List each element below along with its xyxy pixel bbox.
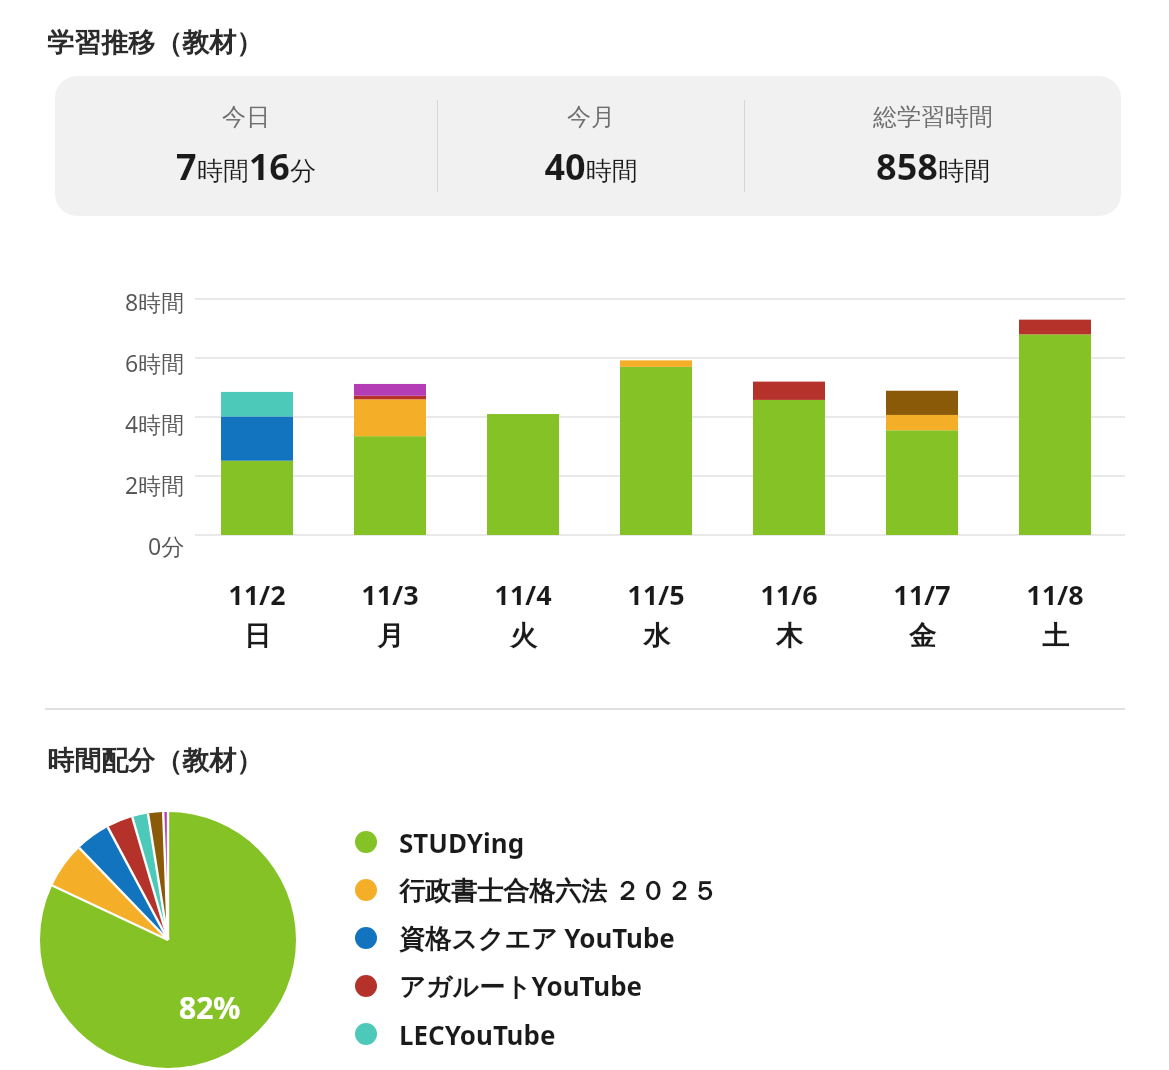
staticText: 火	[510, 619, 537, 653]
staticText: 学習推移（教材）	[47, 26, 263, 60]
staticText: LECYouTube	[399, 1017, 556, 1052]
button[interactable]: アガルートYouTube	[355, 962, 653, 1010]
staticText: 日	[244, 619, 271, 653]
staticText: 月	[377, 619, 404, 653]
button[interactable]: 教材別の時間配分の円グラフ	[40, 812, 296, 1068]
staticText: 82%	[179, 987, 241, 1028]
button[interactable]: 11/3	[335, 576, 445, 653]
staticText: 858時間	[876, 142, 990, 191]
staticText: 木	[776, 619, 803, 653]
staticText: 6時間	[125, 347, 185, 378]
staticText: STUDYing	[399, 825, 525, 860]
staticText: 2時間	[125, 469, 185, 500]
button[interactable]: 資格スクエア YouTube	[355, 914, 685, 962]
staticText: 40時間	[544, 142, 638, 191]
staticText: 11/7	[893, 576, 951, 613]
button[interactable]: 11/8	[1000, 576, 1110, 653]
staticText: 0分	[148, 530, 185, 561]
staticText: 11/6	[760, 576, 818, 613]
button[interactable]: 行政書士合格六法 ２０２５	[355, 866, 728, 914]
staticText: 行政書士合格六法 ２０２５	[399, 872, 718, 908]
button[interactable]: STUDYing	[355, 818, 535, 866]
staticText: 11/5	[627, 576, 685, 613]
staticText: 11/2	[228, 576, 286, 613]
staticText: 11/8	[1026, 576, 1084, 613]
staticText: 今日	[222, 102, 270, 132]
button[interactable]: 今日	[55, 76, 1121, 216]
button[interactable]: 11/4	[468, 576, 578, 653]
staticText: 土	[1042, 619, 1069, 653]
button[interactable]: 11/2	[202, 576, 312, 653]
staticText: 11/4	[494, 576, 552, 613]
staticText: アガルートYouTube	[399, 968, 643, 1004]
staticText: 11/3	[361, 576, 419, 613]
staticText: 4時間	[125, 408, 185, 439]
staticText: 7時間16分	[176, 142, 316, 191]
staticText: 今月	[567, 102, 615, 132]
button[interactable]: 11/5	[601, 576, 711, 653]
staticText: 8時間	[125, 286, 185, 317]
staticText: 時間配分（教材）	[47, 744, 263, 778]
staticText: 水	[643, 619, 670, 653]
staticText: 資格スクエア YouTube	[399, 920, 675, 956]
button[interactable]: LECYouTube	[355, 1010, 566, 1058]
button[interactable]: 11/7	[867, 576, 977, 653]
button[interactable]: 11/6	[734, 576, 844, 653]
staticText: 金	[909, 619, 936, 653]
staticText: 総学習時間	[873, 102, 993, 132]
